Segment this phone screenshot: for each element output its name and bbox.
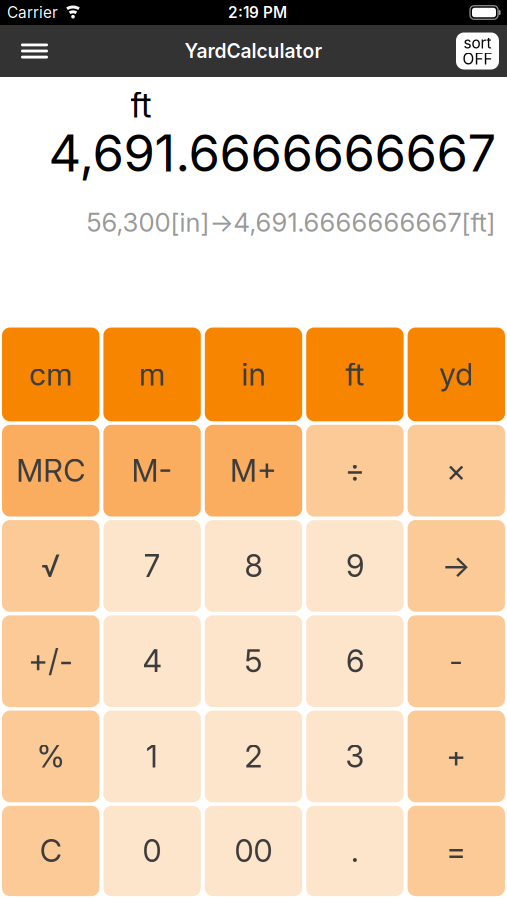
- staticText: =: [446, 832, 466, 869]
- button[interactable]: cm: [2, 327, 99, 421]
- button[interactable]: %: [2, 710, 99, 802]
- staticText: yd: [439, 356, 473, 393]
- staticText: +: [446, 738, 466, 775]
- staticText: √: [41, 547, 60, 584]
- button[interactable]: =: [408, 806, 505, 896]
- button[interactable]: M+: [205, 425, 302, 517]
- staticText: M-: [132, 452, 173, 489]
- button[interactable]: Menu: [0, 43, 48, 58]
- button[interactable]: 8: [205, 520, 302, 612]
- staticText: m: [139, 356, 165, 393]
- staticText: .: [351, 832, 359, 869]
- staticText: ft: [345, 356, 364, 393]
- staticText: in: [241, 356, 265, 393]
- button[interactable]: ft: [306, 327, 404, 421]
- staticText: 00: [234, 832, 272, 869]
- button[interactable]: MRC: [2, 425, 99, 517]
- button[interactable]: √: [2, 520, 99, 612]
- button[interactable]: m: [103, 327, 201, 421]
- staticText: 0: [143, 832, 162, 869]
- button[interactable]: .: [306, 806, 404, 896]
- staticText: 7: [144, 547, 161, 584]
- staticText: +/-: [28, 643, 73, 680]
- staticText: 6: [346, 643, 364, 680]
- button[interactable]: Sort OFF: [456, 32, 499, 69]
- button[interactable]: 1: [103, 710, 201, 802]
- staticText: YardCalculator: [184, 39, 322, 63]
- button[interactable]: 7: [103, 520, 201, 612]
- button[interactable]: 4: [103, 615, 201, 707]
- staticText: OFF: [462, 50, 492, 68]
- staticText: MRC: [16, 452, 85, 489]
- staticText: -: [449, 643, 463, 680]
- staticText: →: [442, 547, 471, 584]
- staticText: C: [40, 832, 62, 869]
- button[interactable]: in: [205, 327, 302, 421]
- staticText: 8: [244, 547, 262, 584]
- button[interactable]: 9: [306, 520, 404, 612]
- staticText: ÷: [345, 452, 365, 489]
- staticText: Carrier: [7, 3, 58, 22]
- staticText: 3: [345, 738, 364, 775]
- staticText: %: [37, 738, 65, 775]
- staticText: M+: [230, 452, 277, 489]
- button[interactable]: M-: [103, 425, 201, 517]
- staticText: 2: [244, 738, 262, 775]
- staticText: cm: [29, 356, 72, 393]
- staticText: 4: [143, 643, 162, 680]
- button[interactable]: -: [408, 615, 505, 707]
- button[interactable]: +/-: [2, 615, 99, 707]
- button[interactable]: +: [408, 710, 505, 802]
- button[interactable]: yd: [408, 327, 505, 421]
- staticText: sort: [463, 34, 491, 52]
- button[interactable]: 5: [205, 615, 302, 707]
- staticText: 56,300[in]→4,691.6666666667[ft]: [86, 207, 495, 238]
- button[interactable]: 3: [306, 710, 404, 802]
- staticText: 2:19 PM: [228, 3, 287, 22]
- staticText: 4,691.6666666667: [48, 122, 496, 184]
- staticText: ft: [130, 84, 151, 126]
- staticText: 9: [346, 547, 364, 584]
- button[interactable]: 2: [205, 710, 302, 802]
- button[interactable]: 0: [103, 806, 201, 896]
- staticText: ×: [446, 452, 466, 489]
- button[interactable]: 6: [306, 615, 404, 707]
- button[interactable]: ×: [408, 425, 505, 517]
- button[interactable]: C: [2, 806, 99, 896]
- staticText: 5: [244, 643, 262, 680]
- button[interactable]: 00: [205, 806, 302, 896]
- button[interactable]: ÷: [306, 425, 404, 517]
- button[interactable]: →: [408, 520, 505, 612]
- staticText: 1: [146, 738, 158, 775]
